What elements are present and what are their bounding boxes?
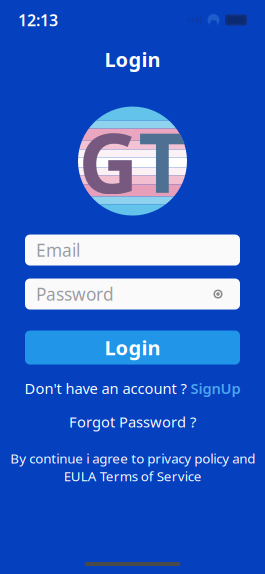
staticText: Password <box>36 283 114 306</box>
staticText: T <box>138 106 186 216</box>
staticText: By continue i agree to privacy policy an… <box>10 449 255 485</box>
staticText: Login <box>104 46 160 73</box>
button[interactable]: Login <box>25 331 240 365</box>
staticText: SignUp <box>190 379 240 398</box>
staticText: 12:13 <box>18 9 58 31</box>
staticText: Don't have an account ? <box>24 379 186 398</box>
staticText: G <box>78 106 138 216</box>
staticText: G <box>78 106 138 216</box>
button[interactable]: Show password <box>207 283 229 305</box>
staticText: Email <box>36 239 80 262</box>
staticText: T <box>138 106 186 216</box>
staticText: Login <box>104 334 160 361</box>
button[interactable]: SignUp <box>190 379 240 398</box>
button[interactable]: Forgot Password ? <box>69 412 196 431</box>
staticText: Forgot Password ? <box>69 412 196 431</box>
